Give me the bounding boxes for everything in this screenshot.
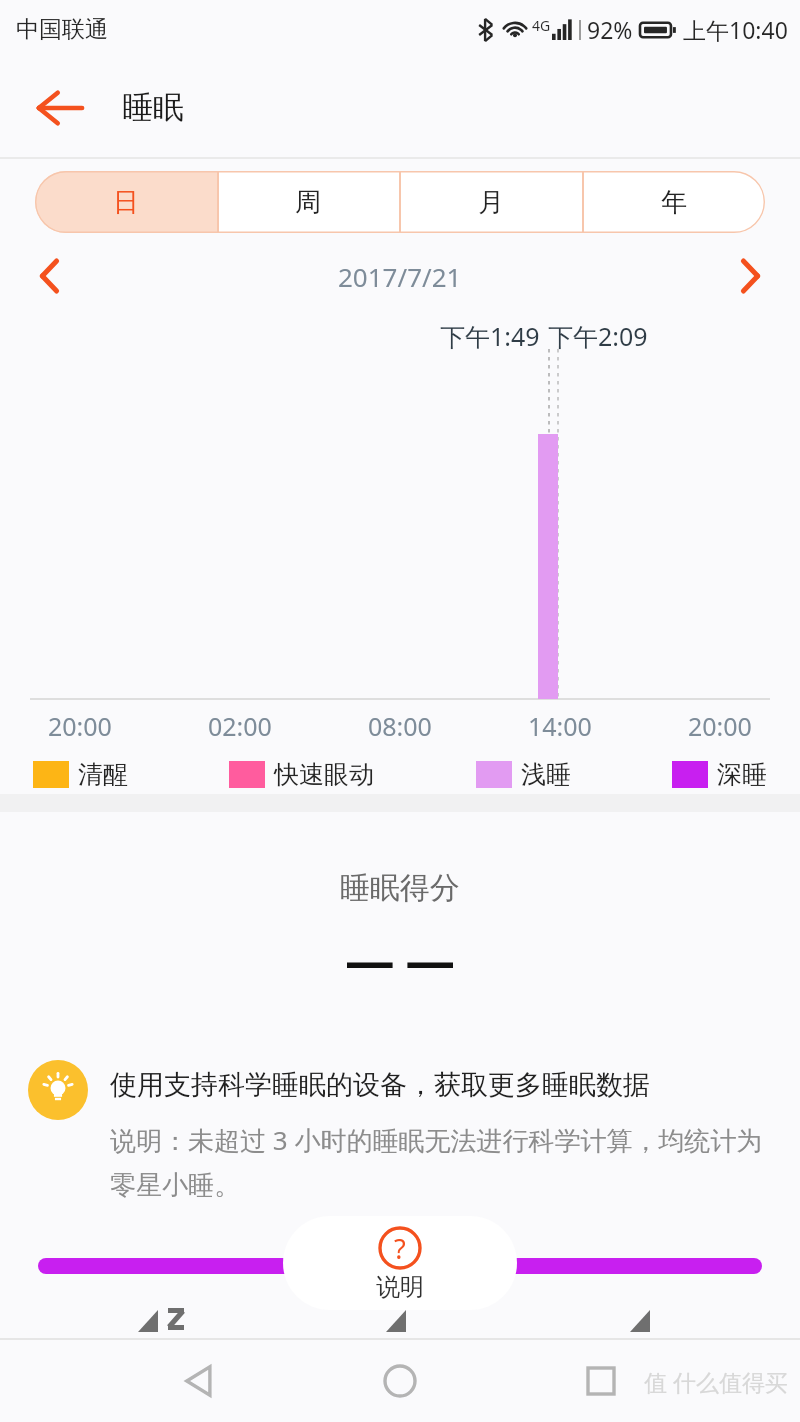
staticText: 周 bbox=[295, 186, 321, 219]
staticText: ? bbox=[394, 1230, 406, 1267]
staticText: 月 bbox=[478, 186, 504, 219]
button[interactable]: 周 bbox=[217, 171, 399, 233]
staticText: 使用支持科学睡眠的设备，获取更多睡眠数据 bbox=[110, 1068, 650, 1102]
staticText: 02:00 bbox=[208, 709, 272, 743]
staticText: 快速眼动 bbox=[274, 759, 374, 790]
staticText: 说明 bbox=[376, 1272, 424, 1302]
staticText: 日 bbox=[113, 186, 139, 219]
button[interactable]: Back bbox=[24, 72, 96, 144]
staticText: 92% bbox=[587, 14, 633, 45]
button[interactable]: 月 bbox=[399, 171, 582, 233]
button[interactable]: Home bbox=[361, 1342, 439, 1420]
staticText: 下午1:49 bbox=[440, 319, 540, 353]
staticText: 4G bbox=[532, 16, 551, 35]
staticText: 下午2:09 bbox=[548, 319, 648, 353]
staticText: 中国联通 bbox=[16, 15, 108, 44]
staticText: 20:00 bbox=[688, 709, 752, 743]
button[interactable]: 年 bbox=[582, 171, 765, 233]
staticText: 清醒 bbox=[78, 759, 128, 790]
button[interactable]: ? bbox=[283, 1216, 517, 1310]
staticText: 睡眠 bbox=[122, 88, 184, 127]
button[interactable]: Recents bbox=[562, 1342, 640, 1420]
button[interactable]: Previous day bbox=[20, 246, 80, 306]
staticText: 浅睡 bbox=[521, 759, 571, 790]
button[interactable]: Next day bbox=[720, 246, 780, 306]
staticText: 08:00 bbox=[368, 709, 432, 743]
staticText: 值 什么值得买 bbox=[644, 1366, 788, 1397]
button[interactable]: Back bbox=[160, 1342, 238, 1420]
staticText: 深睡 bbox=[717, 759, 767, 790]
staticText: 说明：未超过 3 小时的睡眠无法进行科学计算，均统计为零星小睡。 bbox=[110, 1122, 768, 1202]
staticText: 14:00 bbox=[528, 709, 592, 743]
button[interactable]: 日 bbox=[35, 171, 217, 233]
staticText: 20:00 bbox=[48, 709, 112, 743]
staticText: 睡眠得分 bbox=[340, 869, 460, 907]
staticText: 上午10:40 bbox=[683, 14, 788, 45]
staticText: 年 bbox=[661, 186, 687, 219]
staticText: 2017/7/21 bbox=[338, 259, 462, 294]
